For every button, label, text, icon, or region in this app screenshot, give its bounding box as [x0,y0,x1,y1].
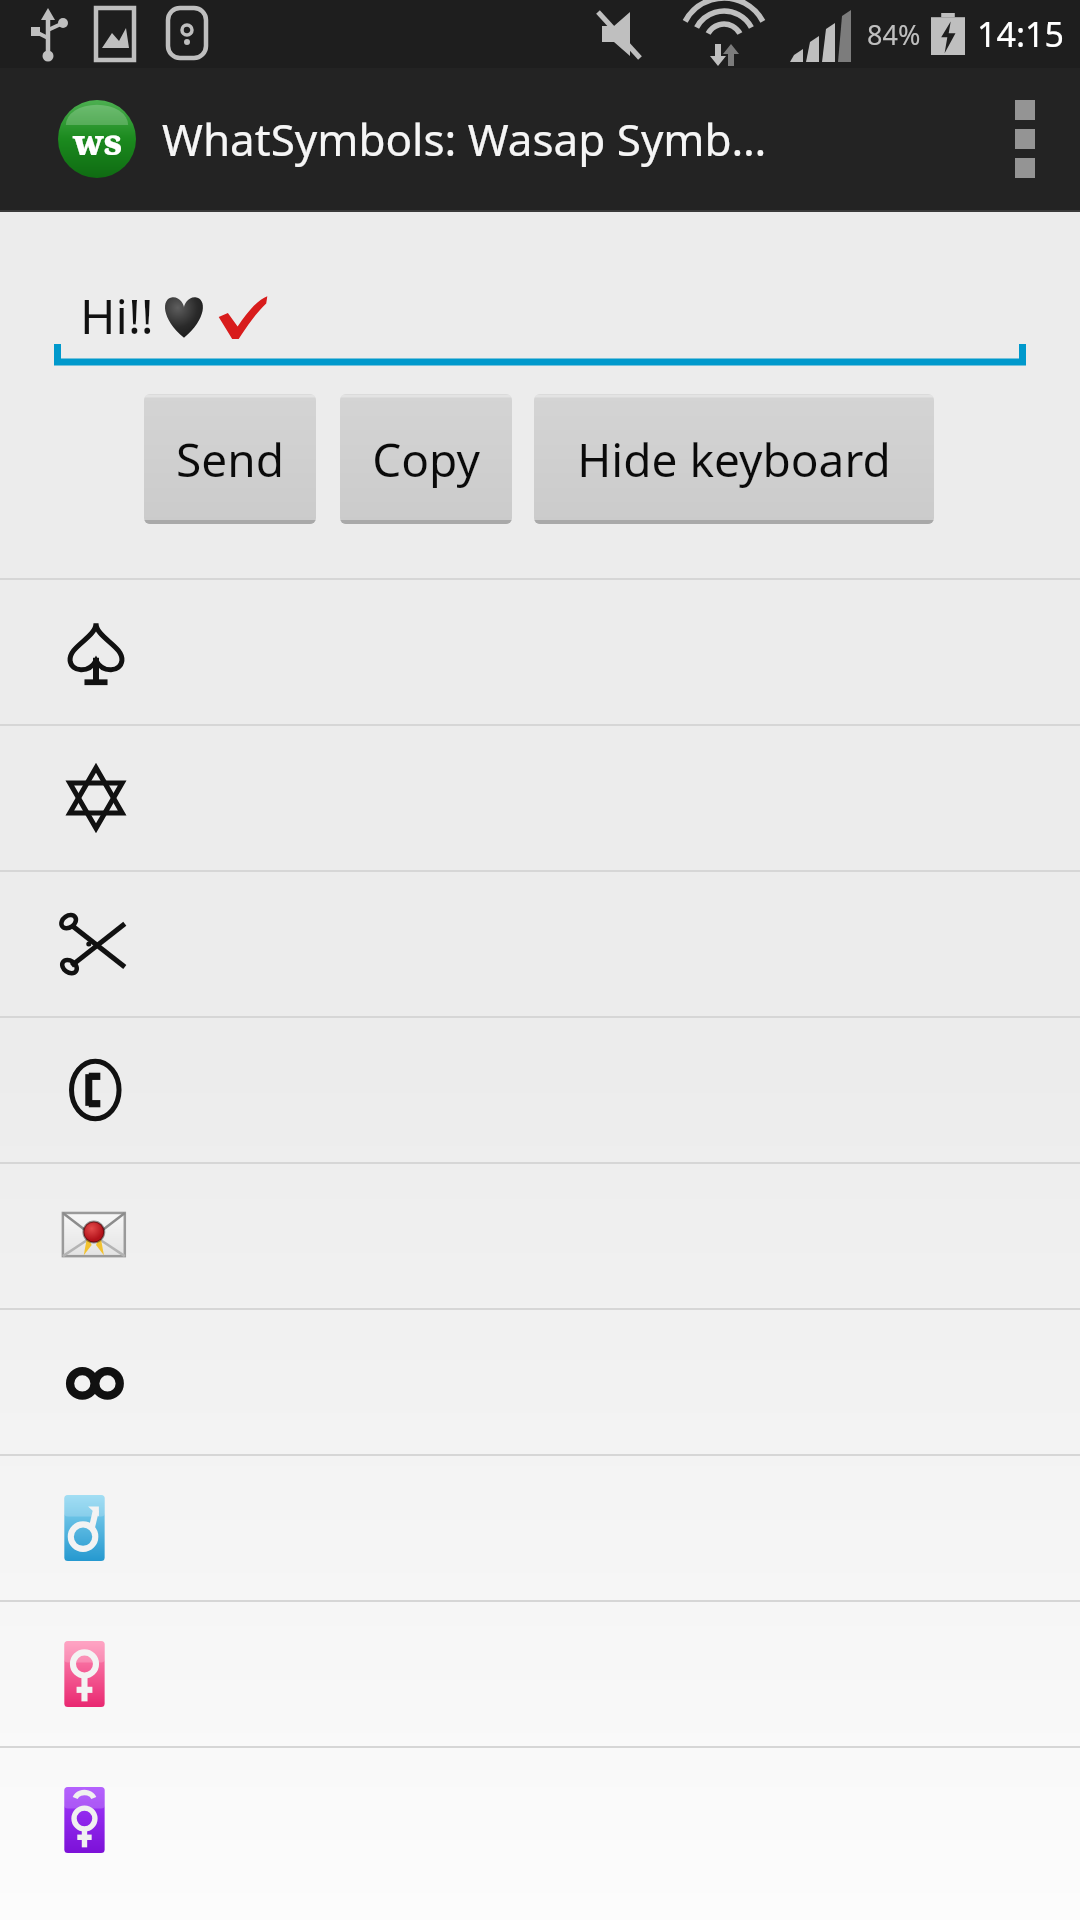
button[interactable] [0,1018,1080,1162]
button[interactable] [0,872,1080,1016]
staticText: Hi!! [80,283,154,348]
button[interactable] [0,1164,1080,1308]
button[interactable] [0,580,1080,724]
staticText: 84% [867,16,921,53]
button[interactable] [0,1748,1080,1892]
button[interactable] [0,1456,1080,1600]
button[interactable] [0,726,1080,870]
button[interactable]: Send [144,394,316,524]
button[interactable]: Hi!! [54,264,1026,368]
staticText: WhatSymbols: Wasap Symb… [162,109,767,169]
staticText: Copy [372,428,480,491]
button[interactable]: Hide keyboard [534,394,934,524]
staticText: 14:15 [977,11,1064,57]
staticText: Hide keyboard [577,428,891,491]
button[interactable] [0,1602,1080,1746]
button[interactable]: Copy [340,394,512,524]
button[interactable] [0,1310,1080,1454]
staticText: Send [176,428,284,491]
button[interactable]: More options [970,68,1080,210]
staticText: ws [73,117,122,166]
